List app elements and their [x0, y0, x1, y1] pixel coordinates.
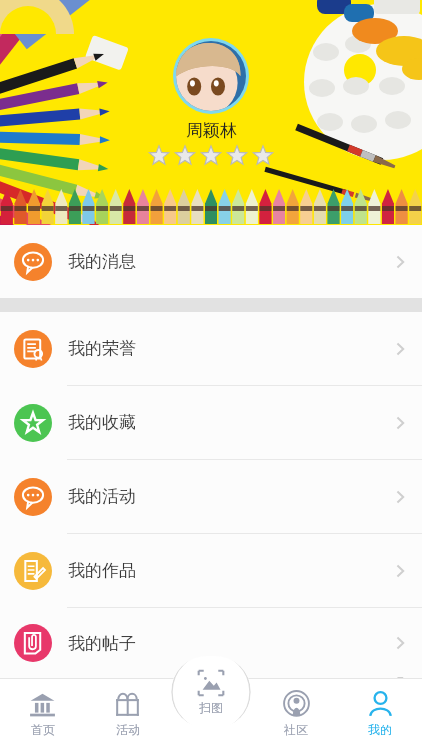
- button[interactable]: 活动: [85, 678, 170, 750]
- staticText: 我的收藏: [68, 412, 136, 433]
- button[interactable]: 社区: [254, 678, 338, 750]
- button[interactable]: 我的收藏: [0, 386, 422, 459]
- staticText: 社区: [284, 722, 308, 737]
- button[interactable]: 我的作品: [0, 534, 422, 607]
- staticText: 活动: [116, 722, 140, 737]
- staticText: 我的作品: [68, 560, 136, 581]
- button[interactable]: 首页: [0, 678, 85, 750]
- button[interactable]: 我的消息: [0, 225, 422, 298]
- staticText: 我的活动: [68, 486, 136, 507]
- staticText: 首页: [31, 722, 55, 737]
- staticText: 我的消息: [68, 251, 136, 272]
- button[interactable]: 扫图 Scan: [171, 656, 251, 728]
- button[interactable]: 我的帖子: [0, 608, 422, 678]
- staticText: 周颖林: [186, 120, 237, 141]
- button[interactable]: 我的: [338, 678, 422, 750]
- button[interactable]: 我的活动: [0, 460, 422, 533]
- button[interactable]: Profile avatar: [173, 38, 249, 114]
- staticText: 我的荣誉: [68, 338, 136, 359]
- staticText: 我的帖子: [68, 633, 136, 654]
- staticText: 扫图: [199, 700, 223, 715]
- staticText: 我的: [368, 722, 392, 737]
- button[interactable]: 我的荣誉: [0, 312, 422, 385]
